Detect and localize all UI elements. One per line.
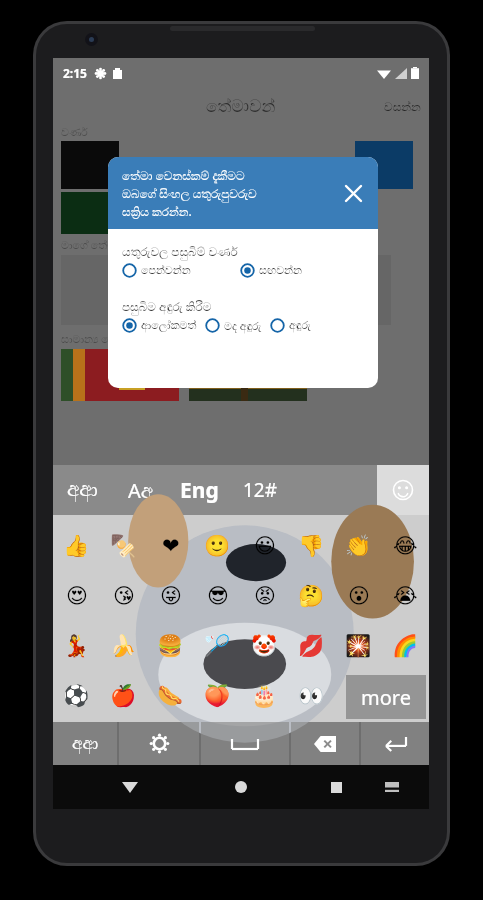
staticText: 👍	[63, 534, 90, 559]
staticText: 👎	[298, 534, 325, 559]
staticText: 🏸	[204, 634, 231, 659]
button[interactable]	[61, 349, 179, 401]
button[interactable]: අඳුරු	[270, 318, 311, 333]
staticText: 🍑	[204, 684, 231, 709]
button[interactable]: ❤️	[147, 521, 194, 571]
staticText: 😘	[113, 584, 135, 608]
button[interactable]	[189, 349, 307, 401]
button[interactable]: 😃	[241, 521, 288, 571]
button[interactable]: Aඅ	[128, 477, 154, 504]
button[interactable]: 👍	[53, 521, 100, 571]
button[interactable]: අආ	[67, 480, 98, 500]
button[interactable]: Space	[201, 722, 289, 765]
button[interactable]	[61, 141, 119, 189]
button[interactable]: 🏸	[194, 621, 241, 671]
button[interactable]: 😘	[100, 571, 147, 621]
button[interactable]: 🤔	[288, 571, 335, 621]
button[interactable]: 🙂	[194, 521, 241, 571]
staticText: 😭	[393, 584, 418, 608]
button[interactable]: 🌈	[382, 621, 429, 671]
button[interactable]: 🍌	[100, 621, 147, 671]
button[interactable]	[335, 671, 382, 721]
staticText: පසුබිම අඳුරු කිරීම	[122, 298, 212, 314]
staticText: ❤️	[162, 534, 180, 558]
button[interactable]: Back	[115, 772, 145, 802]
button[interactable]: 😡	[241, 571, 288, 621]
button[interactable]: 💋	[288, 621, 335, 671]
button[interactable]: more	[346, 675, 426, 719]
button[interactable]: Switch keyboard	[379, 774, 405, 800]
staticText: අආ	[72, 735, 99, 752]
button[interactable]: 😎	[194, 571, 241, 621]
button[interactable]: Language	[53, 722, 117, 765]
button[interactable]: මද අඳුරු	[205, 318, 262, 333]
button[interactable]: 🍔	[147, 621, 194, 671]
button[interactable]: Home	[226, 772, 256, 802]
button[interactable]: 🌭	[147, 671, 194, 721]
button[interactable]: Emoji	[377, 465, 429, 515]
button[interactable]: 😂	[382, 521, 429, 571]
staticText: 🌭	[157, 684, 184, 709]
staticText: 🎂	[251, 684, 278, 709]
staticText: සඟවන්න	[259, 265, 302, 276]
staticText: 🍢	[110, 534, 137, 559]
staticText: ⚽	[63, 684, 90, 709]
button[interactable]: පෙන්වන්න	[122, 263, 210, 278]
button[interactable]: 😭	[382, 571, 429, 621]
staticText: 😜	[160, 584, 182, 608]
staticText: වර්ණ	[61, 127, 88, 138]
button[interactable]: Close	[338, 178, 368, 208]
staticText: 🌈	[392, 634, 419, 659]
button[interactable]: Recents	[321, 772, 351, 802]
staticText: පෙන්වන්න	[141, 265, 191, 276]
button[interactable]: 😍	[53, 571, 100, 621]
button[interactable]: 💃	[53, 621, 100, 671]
staticText: තේමා වෙනස්කම් දැකීමට	[122, 167, 245, 183]
button[interactable]: 12#	[243, 477, 278, 503]
button[interactable]: Backspace	[291, 722, 359, 765]
staticText: 😡	[254, 584, 276, 608]
staticText: 🍔	[157, 634, 184, 659]
staticText: මද අඳුරු	[224, 318, 262, 333]
button[interactable]: Settings	[119, 722, 199, 765]
staticText: 💋	[298, 634, 325, 659]
staticText: 🤡	[251, 634, 278, 659]
button[interactable]: ⚽	[53, 671, 100, 721]
staticText: ආලෝකමත්	[141, 320, 197, 331]
button[interactable]: 😮	[335, 571, 382, 621]
staticText: යතුරුවල පසුබිම් වර්ණ	[122, 243, 238, 259]
staticText: more	[361, 684, 411, 711]
button[interactable]: 🤡	[241, 621, 288, 671]
button[interactable]: වසන්න	[384, 101, 421, 113]
button[interactable]: 🍢	[100, 521, 147, 571]
staticText: මාගේ තේමාවන්	[61, 237, 136, 252]
staticText: 🎇	[345, 634, 372, 659]
button[interactable]: 🎇	[335, 621, 382, 671]
button[interactable]	[355, 141, 413, 189]
staticText: 😃	[254, 534, 276, 558]
button[interactable]: 👎	[288, 521, 335, 571]
staticText: 💃	[63, 634, 90, 659]
staticText: 😮	[348, 584, 370, 608]
button[interactable]: 😜	[147, 571, 194, 621]
button[interactable]	[61, 192, 119, 234]
button[interactable]: 🎂	[241, 671, 288, 721]
button[interactable]: 🍎	[100, 671, 147, 721]
button[interactable]: Enter	[361, 722, 429, 765]
staticText: 🍌	[110, 634, 137, 659]
staticText: සාමාන්‍ය තේමාවන්	[61, 331, 147, 346]
button[interactable]: සඟවන්න	[240, 263, 328, 278]
button[interactable]: Eng	[180, 476, 219, 505]
staticText: 2:15	[63, 65, 87, 81]
button[interactable]: 🍑	[194, 671, 241, 721]
staticText: ඔබගේ සිංහල යතුරුපුවරුව	[122, 185, 257, 201]
button[interactable]: 👀	[288, 671, 335, 721]
staticText: 🙂	[204, 534, 231, 559]
button[interactable]: ආලෝකමත්	[122, 318, 197, 333]
button[interactable]: 👏	[335, 521, 382, 571]
button[interactable]	[382, 671, 429, 721]
staticText: සක්‍රිය කරන්න.	[122, 203, 192, 219]
staticText: 😎	[207, 584, 229, 608]
staticText: තේමාවන්	[206, 98, 276, 115]
staticText: අඳුරු	[289, 320, 311, 331]
